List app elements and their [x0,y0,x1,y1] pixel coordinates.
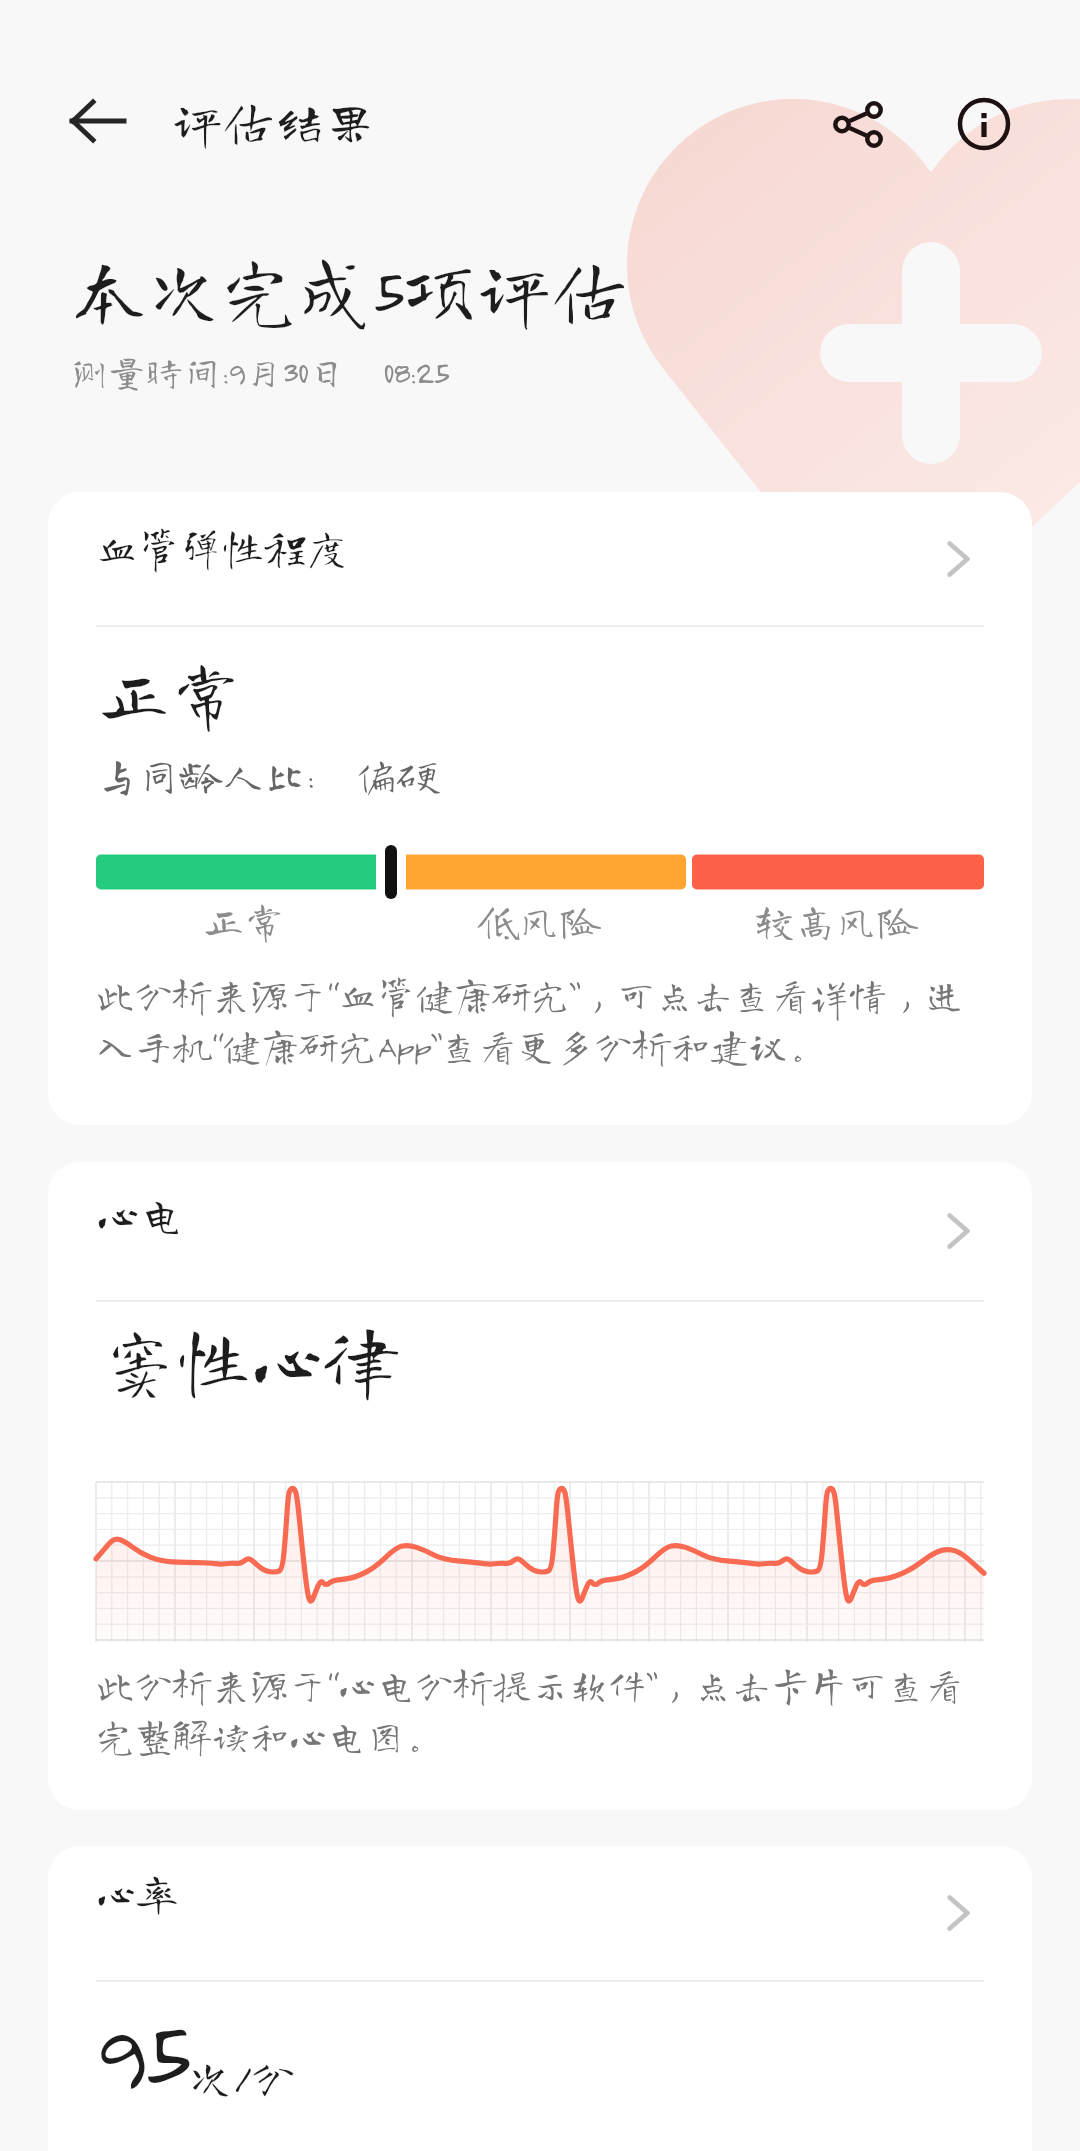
staticText: 95 [94,1994,188,2105]
staticText: 正常 [98,657,243,729]
staticText: 低风险 [478,900,602,941]
staticText: 本次完成5项评估 [72,251,627,326]
button[interactable]: Back [58,66,168,176]
button[interactable]: 血管弹性程度 [48,492,1032,625]
button[interactable]: 心电 [48,1162,1032,1300]
staticText: 与同龄人比: 偏硬 [96,754,440,796]
staticText: 测量时间:9月30日 08:25 [70,353,449,391]
staticText: 此分析来源于“心电分析提示软件”，点击卡片可查看 完整解读和心电图。 [96,1665,964,1754]
button[interactable]: Info [926,66,1042,182]
staticText: 评估结果 [172,95,377,146]
staticText: 正常 [203,900,286,941]
staticText: 血管弹性程度 [96,526,349,568]
staticText: 较高风险 [754,900,919,941]
staticText: 次/分 [188,2054,297,2099]
staticText: 心率 [96,1872,177,1912]
staticText: 窦性心律 [103,1322,399,1396]
button[interactable]: 心率 [48,1846,1032,1980]
staticText: 此分析来源于“血管健康研究”，可点击查看详情，进 入手机“健康研究App”查看更… [96,975,964,1064]
staticText: 心电 [96,1192,185,1236]
button[interactable]: Share [800,66,916,182]
